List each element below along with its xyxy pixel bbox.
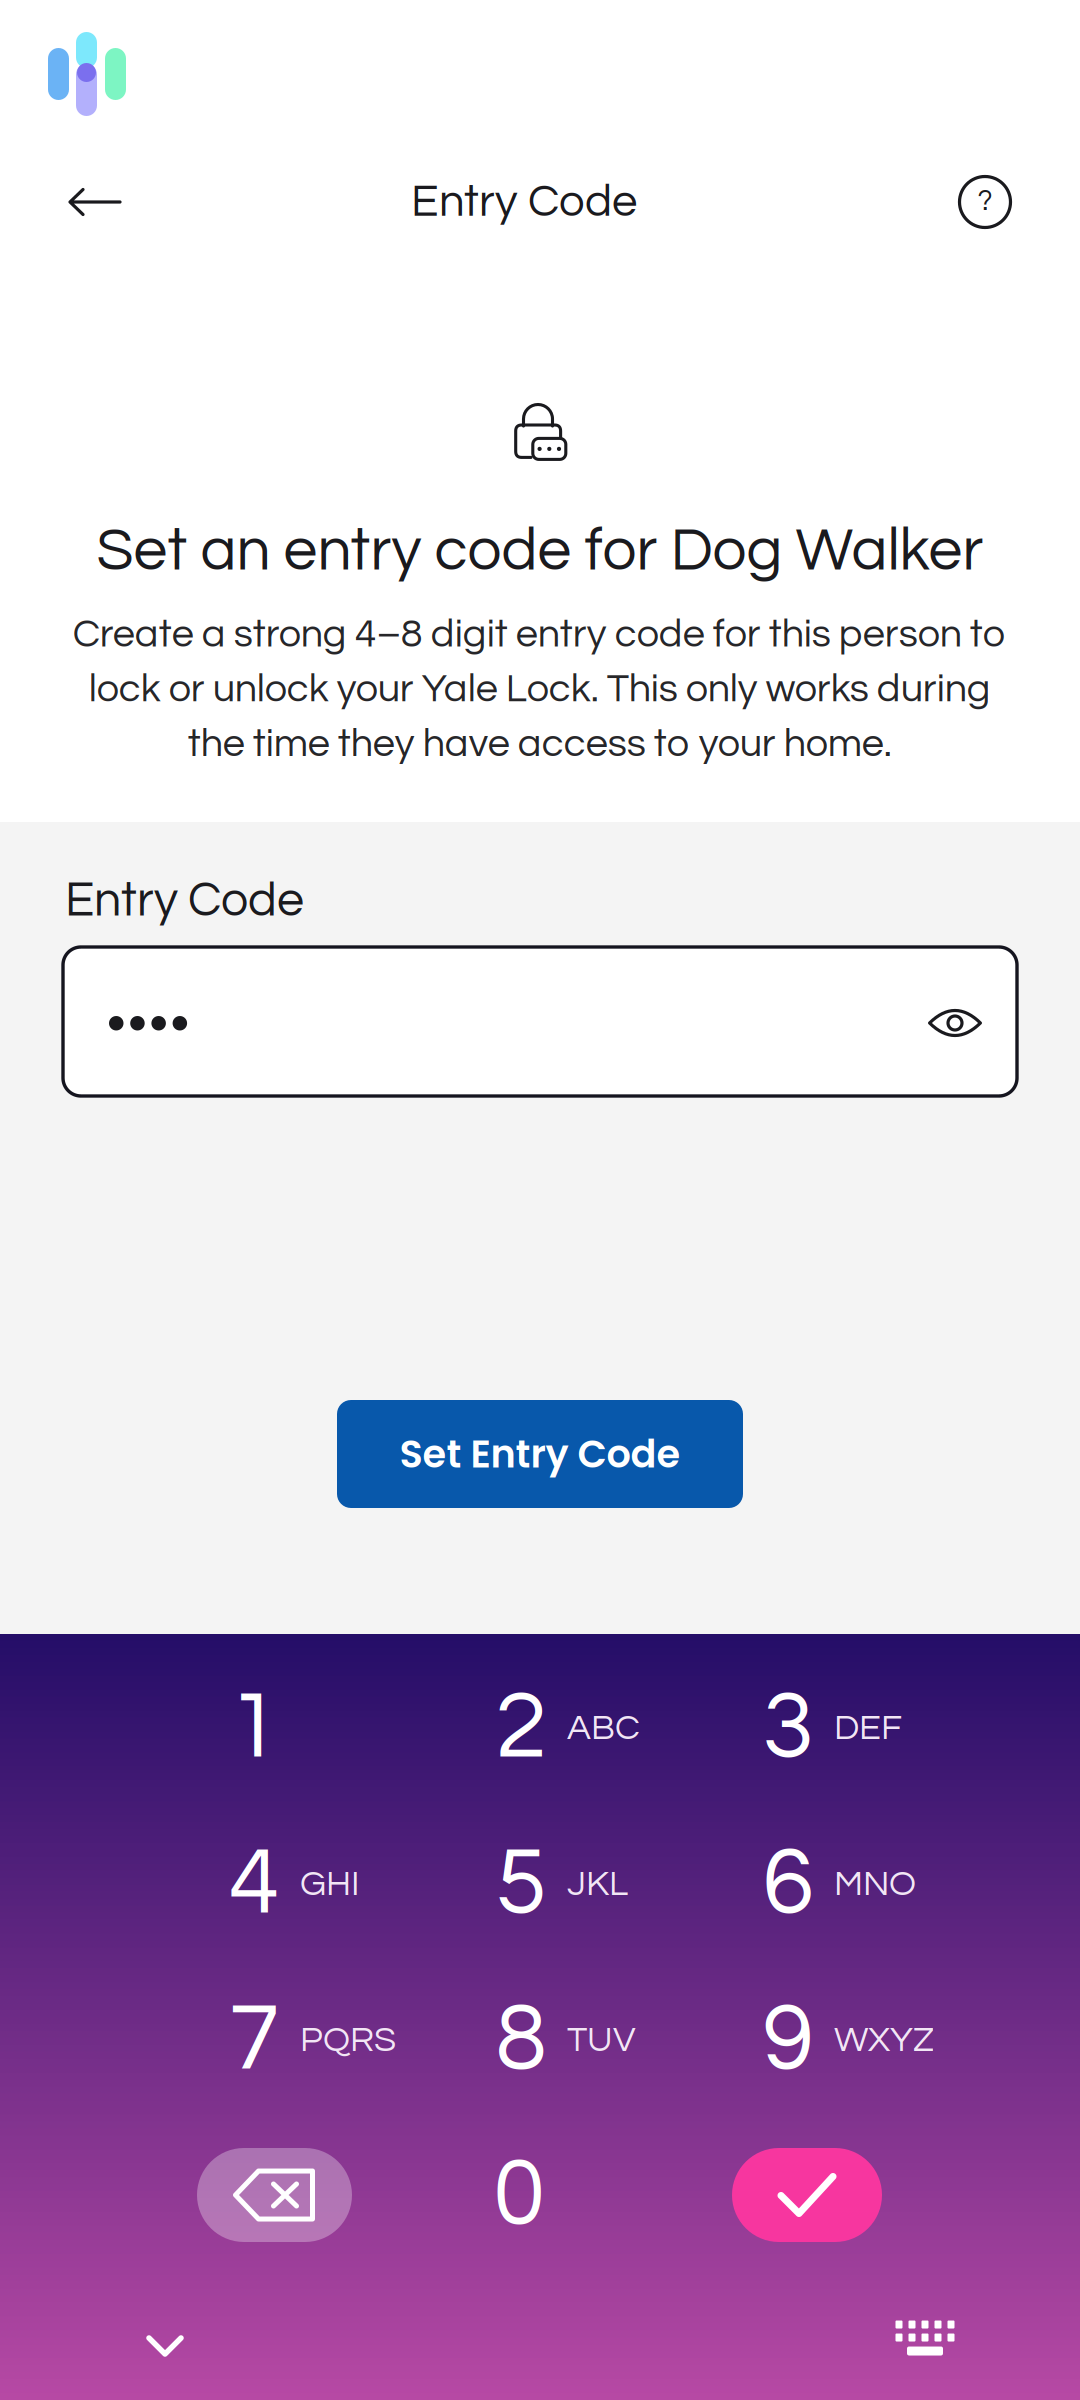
staticText: 5 (495, 1836, 546, 1932)
staticText: 8 (495, 1992, 546, 2088)
staticText: TUV (567, 2021, 636, 2059)
staticText: 7 (228, 1992, 279, 2088)
staticText: ? (977, 186, 992, 216)
staticText: Entry Code (411, 179, 637, 225)
staticText: MNO (834, 1865, 916, 1903)
staticText: DEF (834, 1709, 902, 1747)
button[interactable]: 3 (654, 1650, 921, 1806)
staticText: 4 (228, 1836, 279, 1932)
staticText: Set an entry code for Dog Walker (96, 520, 983, 582)
staticText: Set Entry Code (399, 1427, 680, 1481)
button[interactable]: 5 (387, 1806, 654, 1962)
button[interactable]: Hide keypad (130, 2318, 200, 2374)
button[interactable]: 4 (120, 1806, 387, 1962)
staticText: WXYZ (834, 2021, 934, 2059)
button[interactable]: Confirm (732, 2148, 882, 2242)
button[interactable]: Switch keyboard (885, 2308, 965, 2368)
staticText: 0 (493, 2147, 544, 2243)
staticText: ABC (567, 1709, 640, 1747)
staticText: 1 (228, 1680, 279, 1776)
staticText: 9 (762, 1992, 813, 2088)
button[interactable]: Show entry code (903, 988, 1007, 1058)
button[interactable]: Back (33, 157, 157, 247)
staticText: Entry Code (65, 876, 304, 926)
staticText: PQRS (300, 2021, 396, 2059)
staticText: 6 (762, 1836, 813, 1932)
button[interactable]: Delete (197, 2148, 352, 2242)
staticText: 2 (495, 1680, 546, 1776)
button[interactable]: 6 (654, 1806, 921, 1962)
button[interactable]: Set Entry Code (337, 1400, 743, 1508)
button[interactable]: 0 (208, 2148, 830, 2242)
button[interactable]: 7 (120, 1962, 387, 2118)
staticText: GHI (300, 1865, 360, 1903)
button[interactable]: 2 (387, 1650, 654, 1806)
staticText: 3 (762, 1680, 813, 1776)
staticText: Create a strong 4–8 digit entry code for… (72, 614, 1006, 764)
button[interactable]: 9 (654, 1962, 921, 2118)
button[interactable]: 8 (387, 1962, 654, 2118)
staticText: JKL (567, 1865, 628, 1903)
button[interactable]: Help (931, 157, 1039, 247)
button[interactable]: 1 (120, 1650, 387, 1806)
